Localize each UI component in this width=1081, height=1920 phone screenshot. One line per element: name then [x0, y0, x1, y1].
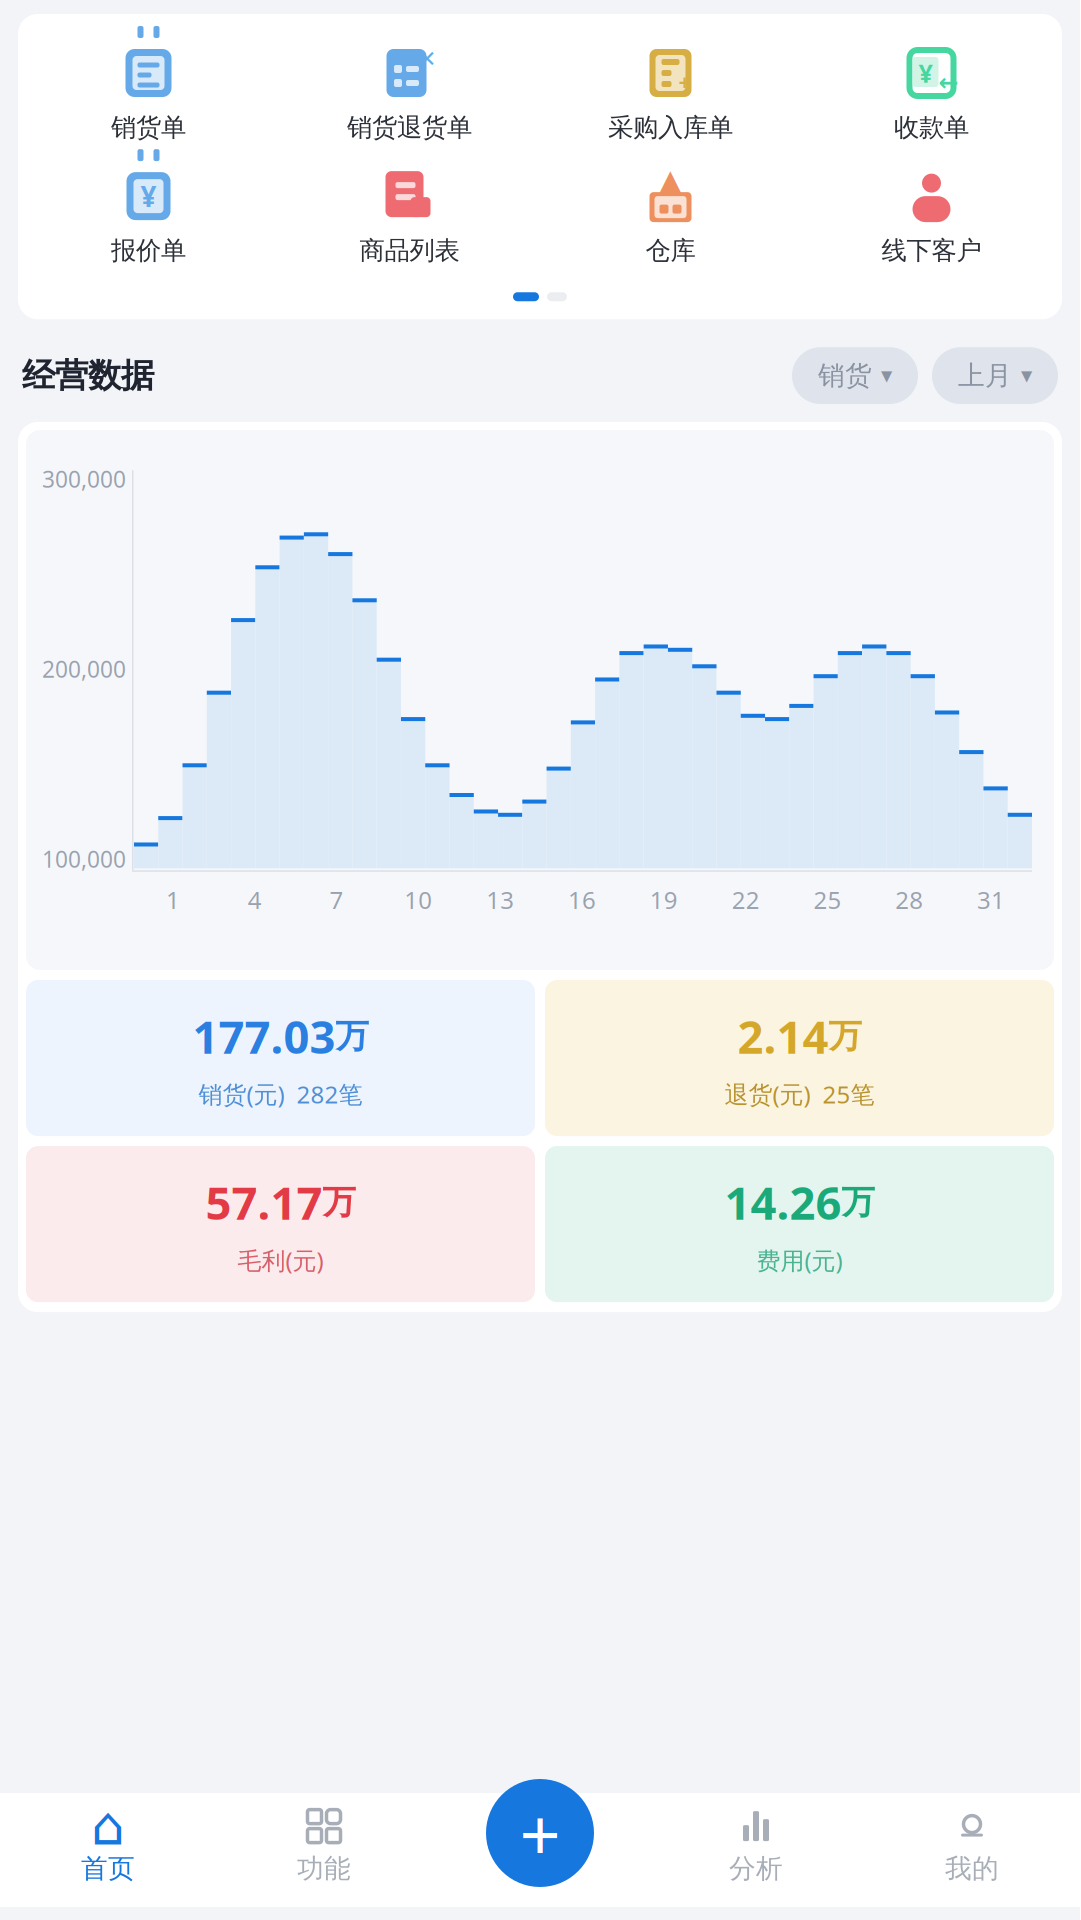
button[interactable]: 我的 — [864, 1809, 1080, 1885]
button[interactable]: 2.14 — [545, 980, 1054, 1136]
staticText: 10 — [404, 884, 432, 916]
button[interactable]: ▲ — [540, 165, 801, 270]
button[interactable]: 57.17 — [26, 1146, 535, 1302]
staticText: 7 — [329, 884, 343, 916]
button[interactable]: 线下客户 — [801, 165, 1062, 270]
staticText: ▼ — [1021, 367, 1032, 384]
staticText: 177.03 — [192, 1006, 335, 1066]
staticText: 线下客户 — [881, 235, 981, 266]
staticText: 19 — [650, 884, 678, 916]
staticText: 14.26 — [724, 1172, 841, 1232]
button[interactable]: ¥ — [18, 165, 279, 270]
staticText: 分析 — [729, 1852, 783, 1885]
staticText: 万 — [322, 1182, 355, 1223]
button[interactable]: + — [540, 42, 801, 147]
staticText: 仓库 — [645, 235, 695, 266]
staticText: 100,000 — [42, 844, 126, 874]
button[interactable]: 14.26 — [545, 1146, 1054, 1302]
staticText: 销货退货单 — [347, 112, 472, 143]
staticText: 经营数据 — [22, 355, 154, 396]
staticText: ⌂ — [91, 1796, 125, 1856]
staticText: 销货 — [818, 359, 872, 392]
staticText: 4 — [248, 884, 262, 916]
staticText: 我的 — [945, 1852, 999, 1885]
button[interactable]: 分析 — [648, 1809, 864, 1885]
staticText: 销货(元) 282笔 — [198, 1078, 362, 1110]
button[interactable]: ✕ — [279, 42, 540, 147]
staticText: + — [519, 1785, 560, 1881]
staticText: 万 — [841, 1182, 874, 1223]
staticText: 上月 — [958, 359, 1012, 392]
staticText: 16 — [568, 884, 596, 916]
staticText: 费用(元) — [756, 1244, 842, 1276]
staticText: ▲ — [655, 160, 686, 206]
staticText: ✕ — [417, 46, 436, 72]
staticText: ← — [938, 69, 958, 96]
staticText: 25 — [813, 884, 841, 916]
staticText: 300,000 — [42, 464, 126, 494]
staticText: 功能 — [297, 1852, 351, 1885]
staticText: ▼ — [881, 367, 892, 384]
staticText: 1 — [166, 884, 180, 916]
staticText: 毛利(元) — [237, 1244, 323, 1276]
staticText: 首页 — [81, 1852, 135, 1885]
staticText: 万 — [335, 1016, 368, 1056]
staticText: 57.17 — [205, 1172, 322, 1232]
staticText: ¥ — [918, 56, 932, 90]
staticText: 2.14 — [737, 1006, 828, 1066]
button[interactable]: 新建 — [486, 1779, 594, 1887]
button[interactable]: 商品列表 — [279, 165, 540, 270]
staticText: 收款单 — [894, 112, 969, 143]
button[interactable]: ⌂ — [0, 1809, 216, 1885]
staticText: 31 — [977, 884, 1005, 916]
staticText: + — [678, 68, 690, 96]
button[interactable]: 销货 — [792, 347, 918, 404]
staticText: 28 — [895, 884, 923, 916]
staticText: 商品列表 — [359, 235, 459, 266]
button[interactable]: 销货单 — [18, 42, 279, 147]
staticText: 13 — [486, 884, 514, 916]
button[interactable]: 上月 — [932, 347, 1058, 404]
staticText: ¥ — [140, 177, 156, 215]
staticText: 退货(元) 25笔 — [724, 1078, 874, 1110]
staticText: 报价单 — [111, 235, 186, 266]
staticText: 销货单 — [111, 112, 186, 143]
button[interactable]: ¥ — [801, 42, 1062, 147]
staticText: 200,000 — [42, 654, 126, 684]
staticText: 22 — [732, 884, 760, 916]
staticText: 采购入库单 — [608, 112, 733, 143]
staticText: 万 — [828, 1016, 861, 1056]
button[interactable]: 功能 — [216, 1809, 432, 1885]
button[interactable]: 177.03 — [26, 980, 535, 1136]
